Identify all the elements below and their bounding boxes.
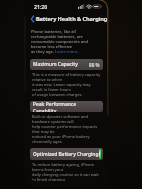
button[interactable]: Optimized Battery Charging: [30, 148, 103, 160]
staticText: 88 %: [89, 62, 100, 68]
staticText: Built-in dynamic software and hardware s…: [32, 114, 101, 124]
staticText: consumable components and become less ef…: [31, 39, 102, 49]
button[interactable]: Optimized Battery Charging toggle, on: [99, 149, 101, 159]
button[interactable]: Peak Performance Capability: [30, 101, 103, 112]
button[interactable]: Back: [29, 13, 49, 24]
staticText: To reduce battery ageing, iPhone learns …: [32, 162, 101, 172]
button[interactable]: Learn more about battery health: [55, 49, 81, 55]
staticText: daily charging routine so it can wait to…: [32, 172, 101, 181]
staticText: Learn more...: [55, 49, 81, 55]
staticText: Peak Performance Capability: [33, 101, 100, 112]
staticText: Back: [35, 15, 47, 22]
staticText: This is a measure of battery capacity re…: [32, 72, 101, 82]
staticText: of usage between charges.: [32, 92, 83, 97]
staticText: Battery Health & Charging: [36, 15, 107, 23]
staticText: Phone batteries, like all rechargeable b…: [31, 29, 102, 39]
button[interactable]: Maximum Capacity: [30, 59, 103, 70]
staticText: Optimized Battery Charging: [33, 151, 99, 158]
staticText: 21:20: [34, 3, 48, 10]
staticText: Maximum Capacity: [33, 61, 78, 68]
staticText: as they age.: [31, 49, 55, 55]
staticText: it was new. Lower capacity may result in…: [32, 82, 101, 92]
staticText: noticed as your iPhone battery chemicall…: [32, 134, 101, 144]
staticText: help counter performance impacts that ma…: [32, 124, 101, 134]
